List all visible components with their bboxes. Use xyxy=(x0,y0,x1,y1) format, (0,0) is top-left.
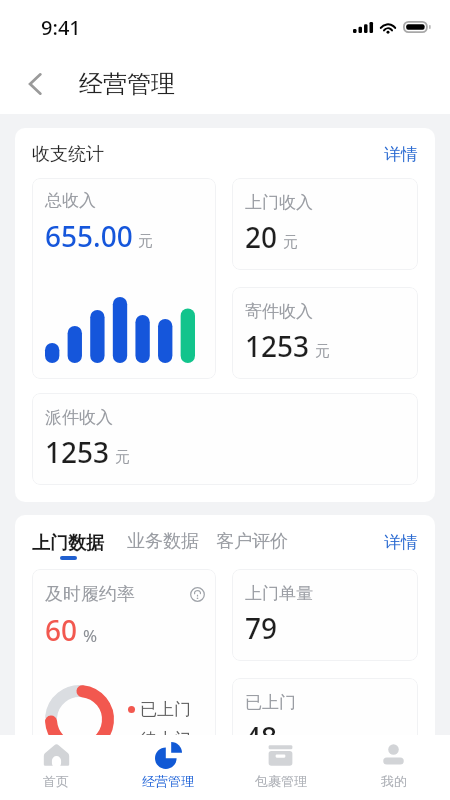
staticText: 9:41 xyxy=(41,14,81,41)
staticText: 元 xyxy=(315,342,330,361)
staticText: 已上门 xyxy=(245,692,296,713)
staticText: 寄件收入 xyxy=(245,301,313,322)
button[interactable]: 上门单量 xyxy=(232,569,418,661)
button[interactable]: 上门收入 xyxy=(232,178,418,270)
button[interactable]: 详情 xyxy=(384,532,418,560)
button[interactable]: 首页 xyxy=(0,735,112,800)
staticText: % xyxy=(83,624,98,647)
staticText: 元 xyxy=(115,448,130,467)
staticText: 1253 xyxy=(245,327,310,365)
button[interactable]: 我的 xyxy=(337,735,450,800)
button[interactable]: 及时履约率 xyxy=(32,569,216,781)
button[interactable]: 经营管理 xyxy=(112,735,224,800)
staticText: 及时履约率 xyxy=(45,583,135,606)
button[interactable]: 上门数据 xyxy=(32,532,104,560)
button[interactable]: 包裹管理 xyxy=(224,735,337,800)
staticText: 60 xyxy=(45,611,78,649)
button[interactable]: 已上门 xyxy=(232,678,418,770)
staticText: 元 xyxy=(138,232,153,251)
staticText: 元 xyxy=(283,233,298,252)
button[interactable]: 业务数据 xyxy=(127,530,199,560)
button[interactable]: 寄件收入 xyxy=(232,287,418,379)
staticText: 1253 xyxy=(45,433,110,471)
staticText: 上门数据 xyxy=(32,532,104,555)
staticText: 派件收入 xyxy=(45,407,113,428)
staticText: 48 xyxy=(245,718,278,756)
button[interactable]: 派件收入 xyxy=(32,393,418,485)
staticText: 上门单量 xyxy=(245,583,313,604)
button[interactable]: 详情 xyxy=(384,144,418,165)
button[interactable]: 总收入 xyxy=(32,178,216,379)
staticText: 首页 xyxy=(43,773,69,789)
button[interactable]: Back xyxy=(14,62,58,106)
staticText: 79 xyxy=(245,609,278,647)
staticText: 经营管理 xyxy=(79,69,175,99)
staticText: 总收入 xyxy=(45,190,96,211)
staticText: 655.00 xyxy=(45,217,133,255)
button[interactable]: Help xyxy=(190,587,205,602)
staticText: 已上门 xyxy=(140,699,191,720)
staticText: 包裹管理 xyxy=(255,773,307,789)
staticText: 收支统计 xyxy=(32,143,104,166)
staticText: 20 xyxy=(245,218,278,256)
staticText: 我的 xyxy=(381,773,407,789)
staticText: 经营管理 xyxy=(142,773,194,789)
staticText: 上门收入 xyxy=(245,192,313,213)
staticText: 待上门 xyxy=(140,729,191,750)
button[interactable]: 客户评价 xyxy=(216,530,288,560)
